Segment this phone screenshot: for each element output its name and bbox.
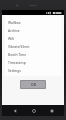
button[interactable]: Vibrate/Silent — [5, 42, 61, 50]
staticText: Wallbox — [8, 20, 21, 24]
button[interactable]: Back — [9, 105, 20, 116]
button[interactable]: Wifi — [5, 34, 61, 42]
staticText: Settings — [8, 68, 21, 72]
staticText: Timestamp — [8, 60, 26, 64]
button[interactable]: Home — [28, 105, 39, 116]
staticText: OK — [31, 82, 36, 87]
button[interactable]: Wallbox — [5, 18, 61, 26]
button[interactable]: Archive — [5, 26, 61, 34]
button[interactable]: Booth Time — [5, 50, 61, 58]
staticText: Vibrate/Silent — [8, 44, 30, 48]
staticText: Wifi — [8, 36, 15, 40]
staticText: Archive — [8, 28, 20, 32]
button[interactable]: Timestamp — [5, 58, 61, 66]
button[interactable]: Recent apps — [46, 105, 57, 116]
staticText: Booth Time — [8, 52, 27, 56]
button[interactable]: Settings — [5, 66, 61, 74]
button[interactable]: OK — [21, 81, 45, 88]
